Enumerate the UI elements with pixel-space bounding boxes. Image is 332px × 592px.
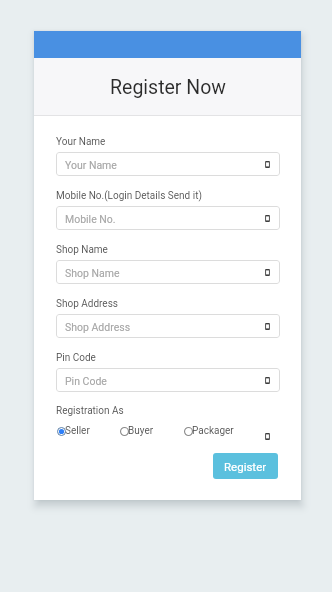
staticText: Register [224, 460, 267, 473]
button[interactable]: Buyer [120, 425, 155, 437]
staticText: Seller [65, 425, 90, 437]
staticText: Mobile No.(Login Details Send it) [56, 190, 202, 202]
staticText: Pin Code [56, 352, 96, 364]
staticText: Pin Code [65, 375, 263, 387]
staticText: Shop Name [56, 244, 108, 256]
staticText: Mobile No. [65, 213, 263, 225]
button[interactable]: Pin Code [56, 368, 280, 392]
button[interactable]: Shop Address [56, 314, 280, 338]
staticText: Shop Name [65, 267, 263, 279]
button[interactable]: Register [213, 453, 278, 479]
button[interactable]: Shop Name [56, 260, 280, 284]
staticText: Register Now [110, 76, 226, 99]
staticText: Your Name [56, 136, 106, 148]
button[interactable]: Mobile No. [56, 206, 280, 230]
button[interactable]: Your Name [56, 152, 280, 176]
staticText: Shop Address [65, 321, 263, 333]
button[interactable]: Seller [57, 425, 91, 437]
button[interactable]: Registration type input [263, 432, 272, 441]
staticText: Packager [192, 425, 234, 437]
staticText: Buyer [128, 425, 154, 437]
staticText: Shop Address [56, 298, 118, 310]
button[interactable]: Packager [184, 425, 235, 437]
staticText: Registration As [56, 405, 124, 417]
staticText: Your Name [65, 159, 263, 171]
